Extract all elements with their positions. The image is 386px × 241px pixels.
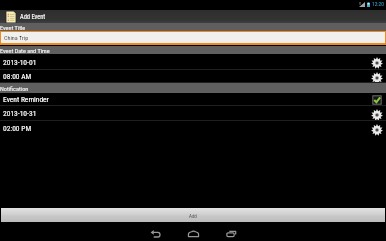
staticText: Add (189, 213, 197, 219)
staticText: 08:00 AM (3, 72, 32, 81)
staticText: 02:00 PM (3, 124, 32, 133)
staticText: Event Date and Time (0, 47, 50, 54)
button[interactable]: 2013-10-31 (0, 106, 386, 121)
button[interactable]: Add (1, 208, 385, 222)
button[interactable]: Recent apps (225, 224, 237, 241)
other: Change 08:00 AM (371, 72, 383, 84)
button[interactable]: Home (187, 224, 199, 241)
button[interactable]: Add Event (0, 10, 386, 23)
button[interactable]: 2013-10-01 (0, 54, 386, 70)
staticText: 12:20 (372, 1, 384, 7)
other: Change 2013-10-31 (371, 109, 383, 121)
button[interactable]: Back (149, 224, 161, 241)
staticText: Event Title (0, 24, 26, 31)
staticText: Event Reminder (3, 95, 49, 104)
button[interactable]: Event Reminder (0, 93, 386, 106)
button[interactable]: China Trip (1, 32, 385, 43)
button[interactable]: 02:00 PM (0, 121, 386, 136)
button[interactable]: 08:00 AM (0, 70, 386, 83)
staticText: Notification (0, 85, 29, 92)
staticText: China Trip (4, 34, 29, 41)
other: Change 02:00 PM (371, 124, 383, 136)
staticText: 2013-10-31 (3, 109, 37, 118)
other: Change 2013-10-01 (371, 57, 383, 69)
staticText: Add Event (20, 13, 46, 21)
staticText: 2013-10-01 (3, 58, 37, 67)
